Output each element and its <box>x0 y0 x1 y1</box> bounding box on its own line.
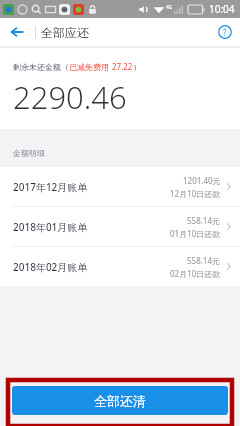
staticText: 558.14元 <box>187 255 221 266</box>
staticText: 已减免费用 <box>69 61 112 72</box>
button[interactable]: Help <box>210 18 240 46</box>
staticText: 12月10日还款 <box>170 188 221 199</box>
staticText: 2290.46 <box>13 76 127 118</box>
staticText: 金额明细 <box>13 148 45 158</box>
staticText: 02月10日还款 <box>170 268 221 279</box>
staticText: 2017年12月账单 <box>13 180 88 194</box>
staticText: 1201.40元 <box>183 175 221 186</box>
staticText: 全部应还 <box>41 25 89 40</box>
staticText: 2018年02月账单 <box>13 260 88 274</box>
staticText: 10:04 <box>209 2 235 16</box>
button[interactable]: 2018年01月账单 <box>0 207 240 247</box>
button[interactable]: Back <box>0 18 34 46</box>
button[interactable]: 全部还清 <box>12 386 228 415</box>
staticText: 全部还清 <box>94 393 146 409</box>
button[interactable]: 2018年02月账单 <box>0 247 240 286</box>
staticText: 558.14元 <box>187 215 221 226</box>
staticText: 4G <box>166 4 173 11</box>
staticText: 01月10日还款 <box>170 228 221 239</box>
staticText: 27.22 <box>112 61 133 72</box>
staticText: ? <box>223 27 227 38</box>
staticText: 2018年01月账单 <box>13 220 88 234</box>
staticText: 剩余未还金额（ <box>13 62 69 72</box>
staticText: ） <box>133 62 141 72</box>
button[interactable]: 2017年12月账单 <box>0 167 240 207</box>
